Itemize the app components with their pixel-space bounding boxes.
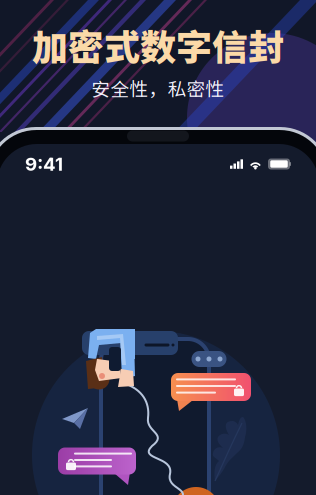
staticText: 9:41 <box>25 153 63 175</box>
staticText: 加密式数字信封 <box>32 19 284 71</box>
staticText: 安全性，私密性 <box>91 74 224 101</box>
